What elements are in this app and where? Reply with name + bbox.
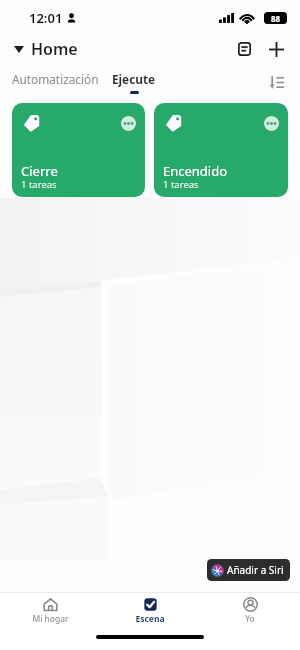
staticText: Yo (245, 613, 255, 625)
staticText: Encendido (163, 162, 228, 180)
button[interactable]: Mi hogar (0, 593, 100, 635)
staticText: Automatización (12, 71, 99, 87)
button[interactable]: Automatización (12, 71, 99, 87)
button[interactable]: Yo (200, 593, 300, 635)
button[interactable]: Escena (100, 593, 200, 635)
staticText: 88 (271, 13, 281, 24)
button[interactable]: Home (0, 38, 86, 60)
staticText: 1 tareas (163, 178, 199, 191)
button[interactable]: Añadir a Siri (207, 559, 290, 581)
staticText: 1 tareas (21, 178, 57, 191)
button[interactable]: More options (264, 116, 279, 131)
staticText: Home (31, 38, 78, 60)
staticText: Mi hogar (32, 613, 69, 625)
button[interactable]: More options (121, 116, 136, 131)
button[interactable]: More options (154, 103, 288, 197)
staticText: 12:01 (29, 9, 63, 27)
staticText: Cierre (21, 162, 58, 180)
button[interactable]: Ejecute (112, 71, 156, 94)
button[interactable]: Notes (232, 37, 256, 61)
button[interactable]: Add (264, 37, 288, 61)
button[interactable]: More options (12, 103, 145, 197)
staticText: Escena (135, 613, 165, 625)
button[interactable]: Sort (266, 71, 288, 93)
staticText: Ejecute (112, 71, 156, 87)
staticText: Añadir a Siri (227, 563, 284, 577)
